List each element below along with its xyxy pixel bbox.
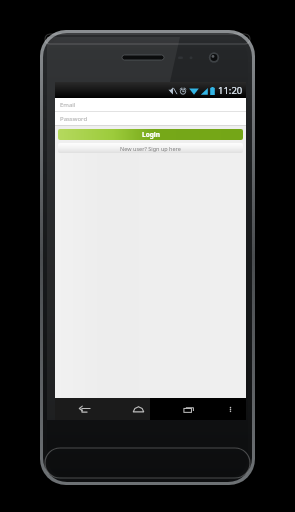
staticText: Password <box>60 115 88 123</box>
staticText: Email <box>60 101 76 109</box>
button[interactable]: Home <box>113 398 164 420</box>
button[interactable]: New user? Sign up here <box>58 143 243 153</box>
staticText: New user? Sign up here <box>120 145 181 152</box>
button[interactable]: Password <box>55 112 246 125</box>
button[interactable]: Login <box>58 129 243 140</box>
button[interactable]: More options <box>215 398 246 420</box>
button[interactable]: Recent apps <box>164 398 215 420</box>
button[interactable]: Email <box>55 98 246 111</box>
staticText: 11:20 <box>218 84 243 97</box>
staticText: Login <box>142 130 160 139</box>
button[interactable]: Back <box>55 398 113 420</box>
